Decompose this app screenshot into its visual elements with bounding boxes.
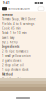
staticText: 1 small yellow onion: [2, 54, 31, 58]
button[interactable]: Site icon: [2, 7, 7, 10]
staticText: 3 garlic cloves: [2, 59, 21, 62]
staticText: Ingredients: [2, 45, 19, 48]
staticText: Heat the oil in a pan: [2, 77, 31, 81]
staticText: Tomato Soup, Well Done: [2, 17, 36, 21]
staticText: Level: Easy: [2, 36, 14, 39]
staticText: Tomato: [2, 13, 13, 16]
staticText: 2 tbsp olive oil: [2, 63, 24, 67]
staticText: Yields: 4 to 6 servings: [2, 22, 34, 26]
staticText: 1 cup chicken stock: [2, 68, 28, 71]
button[interactable]: Reader view: [38, 7, 44, 11]
staticText: 9:41: [3, 1, 10, 5]
staticText: Add the onion, soften: [2, 82, 35, 85]
staticText: Method: [2, 73, 13, 76]
staticText: seriouseats.com: [8, 7, 29, 10]
staticText: By: J. Kenji: [2, 40, 18, 44]
staticText: Total: 1 hr 10 min: [2, 31, 27, 35]
staticText: Cook: 45 min: [2, 27, 21, 30]
staticText: 2 lb ripe tomatoes: [2, 50, 28, 53]
